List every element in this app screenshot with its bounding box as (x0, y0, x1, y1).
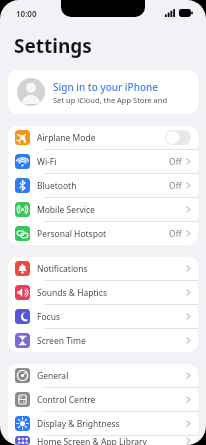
button[interactable]: Bluetooth (8, 174, 198, 197)
staticText: Airplane Mode (37, 132, 165, 144)
staticText: Bluetooth (37, 180, 169, 192)
staticText: Mobile Service (37, 204, 186, 216)
button[interactable]: Personal Hotspot (8, 222, 198, 245)
button[interactable]: General (8, 364, 198, 387)
staticText: Display & Brightness (37, 418, 186, 430)
staticText: Control Centre (37, 394, 186, 406)
staticText: 10:00 (16, 8, 37, 19)
button[interactable]: Airplane Mode (8, 126, 198, 149)
staticText: Personal Hotspot (37, 228, 169, 240)
button[interactable]: Wi-Fi (8, 150, 198, 173)
staticText: Off (169, 180, 182, 192)
staticText: Home Screen & App Library (37, 436, 186, 445)
button[interactable]: Sounds & Haptics (8, 281, 198, 304)
button[interactable]: Control Centre (8, 388, 198, 411)
staticText: Set up iCloud, the App Store and more. (53, 95, 189, 105)
staticText: Notifications (37, 263, 186, 275)
button[interactable]: Home Screen & App Library (8, 436, 198, 445)
staticText: Sign in to your iPhone (53, 80, 159, 94)
button[interactable]: Display & Brightness (8, 412, 198, 435)
staticText: Screen Time (37, 335, 186, 347)
staticText: Wi-Fi (37, 156, 169, 168)
button[interactable]: Sign in to your iPhone (8, 70, 198, 114)
staticText: Sounds & Haptics (37, 287, 186, 299)
button[interactable]: Focus (8, 305, 198, 328)
staticText: Off (169, 228, 182, 240)
staticText: Focus (37, 311, 186, 323)
button[interactable]: Mobile Service (8, 198, 198, 221)
button[interactable]: Notifications (8, 257, 198, 280)
staticText: Settings (14, 33, 92, 59)
staticText: General (37, 370, 186, 382)
button[interactable]: Screen Time (8, 329, 198, 352)
staticText: Off (169, 156, 182, 168)
button[interactable]: Airplane Mode toggle (165, 130, 191, 145)
